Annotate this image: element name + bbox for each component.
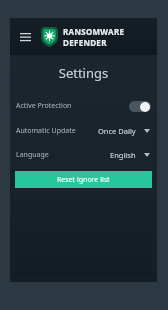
- staticText: Active Protection: [16, 101, 72, 111]
- button[interactable]: Active Protection: [10, 95, 157, 117]
- button[interactable]: RANSOMWARE: [41, 26, 125, 48]
- staticText: RANSOMWARE: [63, 26, 125, 37]
- other: Expand Language: [143, 151, 151, 159]
- staticText: DEFENDER: [63, 37, 107, 48]
- staticText: English: [110, 150, 136, 160]
- button[interactable]: Automatic Update: [10, 121, 157, 141]
- staticText: Automatic Update: [16, 126, 76, 136]
- staticText: Language: [16, 150, 49, 160]
- button[interactable]: Menu: [17, 29, 33, 45]
- staticText: Settings: [10, 64, 157, 82]
- button[interactable]: Reset ignore list: [15, 171, 152, 188]
- staticText: Reset ignore list: [57, 175, 110, 185]
- button[interactable]: Language: [10, 145, 157, 165]
- other: Expand Automatic Update: [143, 127, 151, 135]
- staticText: Once Daily: [98, 126, 136, 136]
